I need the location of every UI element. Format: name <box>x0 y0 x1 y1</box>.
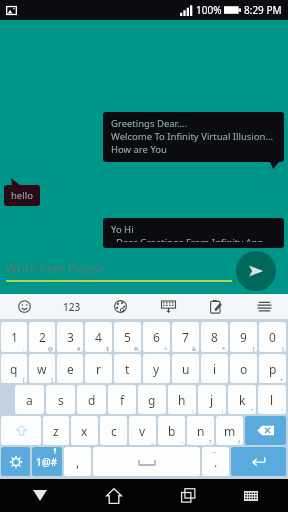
button[interactable]: Send <box>236 251 276 291</box>
staticText: & <box>192 345 197 352</box>
button[interactable]: x <box>71 416 98 445</box>
staticText: h <box>178 392 186 408</box>
staticText: ... <box>212 447 217 454</box>
staticText: u <box>182 361 190 377</box>
button[interactable]: m <box>216 416 243 445</box>
button[interactable]: space <box>93 447 200 476</box>
button[interactable]: j <box>198 385 226 414</box>
staticText: Write here Please <box>6 260 105 276</box>
staticText: 2 <box>39 329 46 345</box>
staticText: i <box>213 361 217 377</box>
button[interactable]: Emoji <box>0 294 48 319</box>
staticText: v <box>139 423 146 439</box>
staticText: ^ <box>164 345 168 352</box>
staticText: d <box>88 392 96 408</box>
staticText: + <box>280 376 284 383</box>
button[interactable]: w <box>29 354 55 383</box>
button[interactable]: Back <box>23 479 57 512</box>
staticText: a <box>26 392 33 408</box>
button[interactable]: 9 <box>230 322 257 352</box>
button[interactable]: h <box>168 385 196 414</box>
staticText: e <box>67 361 74 377</box>
staticText: # <box>77 345 81 352</box>
button[interactable]: u <box>172 354 199 383</box>
button[interactable]: 0 <box>259 322 286 352</box>
staticText: n <box>197 423 205 439</box>
button[interactable]: t <box>114 354 141 383</box>
button[interactable]: a <box>15 385 44 414</box>
staticText: How are You <box>111 143 167 156</box>
button[interactable]: 1@# <box>32 447 62 476</box>
staticText: 1@# <box>36 455 58 469</box>
staticText: x <box>81 423 88 439</box>
button[interactable]: , <box>64 447 91 476</box>
button[interactable]: hello <box>4 185 40 206</box>
button[interactable]: Recents <box>171 479 205 512</box>
staticText: w <box>37 361 47 377</box>
button[interactable]: gear <box>1 447 30 476</box>
button[interactable]: Yo Hi <box>103 218 284 248</box>
button[interactable]: i <box>201 354 228 383</box>
staticText: r <box>96 361 101 377</box>
staticText: : <box>192 407 194 414</box>
staticText: o <box>240 361 248 377</box>
button[interactable]: . <box>202 447 229 476</box>
button[interactable]: e <box>57 354 83 383</box>
button[interactable]: o <box>230 354 257 383</box>
button[interactable]: Greetings Dear.... <box>103 112 284 162</box>
staticText: s <box>58 392 64 408</box>
button[interactable]: r <box>85 354 112 383</box>
staticText: 6 <box>153 329 160 345</box>
button[interactable]: del <box>245 416 286 445</box>
button[interactable]: f <box>108 385 136 414</box>
staticText: z <box>53 423 59 439</box>
button[interactable]: c <box>100 416 127 445</box>
button[interactable]: 6 <box>143 322 170 352</box>
button[interactable]: Numbers <box>48 294 96 319</box>
button[interactable]: q <box>1 354 27 383</box>
button[interactable]: shift <box>1 416 41 445</box>
staticText: g <box>148 392 156 408</box>
staticText: f <box>120 392 125 408</box>
button[interactable]: l <box>258 385 286 414</box>
staticText: ; <box>222 407 224 414</box>
button[interactable]: Clipboard <box>192 294 240 319</box>
staticText: * <box>222 345 226 352</box>
button[interactable]: n <box>187 416 214 445</box>
button[interactable]: g <box>138 385 166 414</box>
staticText: @ <box>48 345 53 352</box>
staticText: 5 <box>124 329 131 345</box>
staticText: y <box>153 361 160 377</box>
button[interactable]: enter <box>231 447 286 476</box>
button[interactable]: z <box>43 416 69 445</box>
button[interactable]: y <box>143 354 170 383</box>
button[interactable]: Keyboard layout <box>144 294 192 319</box>
button[interactable]: s <box>46 385 75 414</box>
button[interactable]: Home <box>97 479 131 512</box>
staticText: ) <box>282 345 284 352</box>
staticText: q <box>10 361 18 377</box>
button[interactable]: 5 <box>114 322 141 352</box>
button[interactable]: 2 <box>29 322 55 352</box>
button[interactable]: Write here Please <box>6 260 232 282</box>
staticText: k <box>239 392 246 408</box>
staticText: . <box>214 454 218 470</box>
button[interactable]: 3 <box>57 322 83 352</box>
button[interactable]: k <box>228 385 256 414</box>
button[interactable]: Hide keyboard <box>234 479 268 512</box>
button[interactable]: 4 <box>85 322 112 352</box>
button[interactable]: 1 <box>1 322 27 352</box>
button[interactable]: b <box>158 416 185 445</box>
staticText: Welcome To Infinity Virtual Illusion... <box>111 130 274 143</box>
button[interactable]: 7 <box>172 322 199 352</box>
button[interactable]: Menu <box>240 294 288 319</box>
button[interactable]: p <box>259 354 286 383</box>
button[interactable]: v <box>129 416 156 445</box>
staticText: " <box>251 407 254 414</box>
staticText: j <box>210 392 214 408</box>
button[interactable]: 8 <box>201 322 228 352</box>
staticText: m <box>224 423 236 439</box>
button[interactable]: d <box>77 385 106 414</box>
staticText: ? <box>209 438 212 445</box>
button[interactable]: Theme <box>96 294 144 319</box>
